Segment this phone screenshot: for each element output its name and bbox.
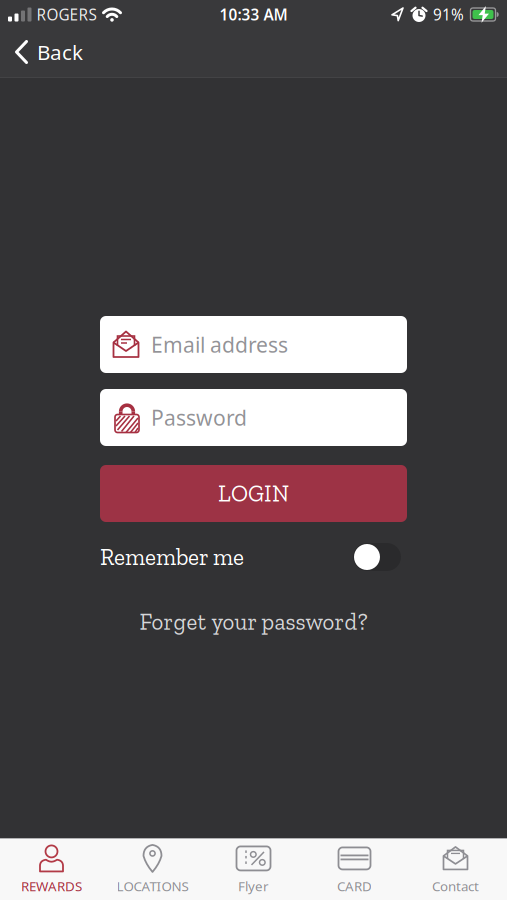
staticText: Contact (432, 877, 479, 895)
button[interactable]: Email address (100, 316, 407, 373)
staticText: ROGERS (36, 4, 96, 25)
staticText: Back (37, 38, 83, 66)
button[interactable]: Contact (405, 840, 506, 898)
button[interactable]: Password (100, 389, 407, 446)
staticText: Password (151, 403, 247, 432)
button[interactable]: Back (0, 38, 83, 66)
staticText: LOGIN (218, 479, 289, 507)
staticText: CARD (337, 877, 372, 895)
button[interactable]: REWARDS (1, 840, 102, 898)
button[interactable]: Forget your password? (139, 608, 367, 635)
staticText: Flyer (238, 877, 269, 895)
button[interactable]: LOCATIONS (102, 840, 203, 898)
button[interactable]: CARD (304, 840, 405, 898)
button[interactable]: Flyer (203, 840, 304, 898)
staticText: Email address (151, 330, 288, 359)
button[interactable]: LOGIN (100, 465, 407, 522)
staticText: Forget your password? (139, 608, 367, 635)
staticText: REWARDS (21, 877, 82, 895)
button[interactable]: Remember me (353, 543, 401, 571)
staticText: Remember me (100, 543, 244, 571)
staticText: 10:33 AM (219, 4, 287, 25)
staticText: 91% (433, 4, 464, 25)
staticText: LOCATIONS (116, 877, 188, 895)
